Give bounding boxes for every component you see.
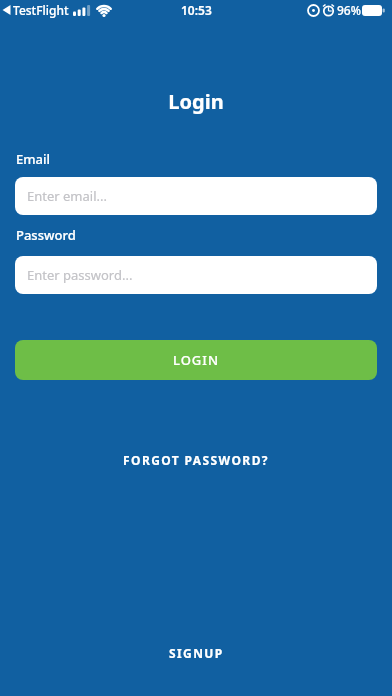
staticText: Login [0,88,392,115]
staticText: TestFlight [13,2,69,18]
button[interactable]: FORGOT PASSWORD? [0,447,392,473]
staticText: Enter password... [27,266,133,284]
staticText: LOGIN [173,351,220,369]
staticText: Password [16,226,76,244]
button[interactable]: Enter email... [15,177,377,215]
button[interactable]: LOGIN [15,340,377,380]
staticText: 10:53 [181,2,212,18]
button[interactable]: Enter password... [15,256,377,294]
button[interactable]: SIGNUP [0,640,392,666]
staticText: 96% [337,2,361,18]
staticText: Enter email... [27,187,107,205]
staticText: Email [16,150,51,168]
staticText: FORGOT PASSWORD? [123,452,269,468]
staticText: SIGNUP [169,645,224,661]
